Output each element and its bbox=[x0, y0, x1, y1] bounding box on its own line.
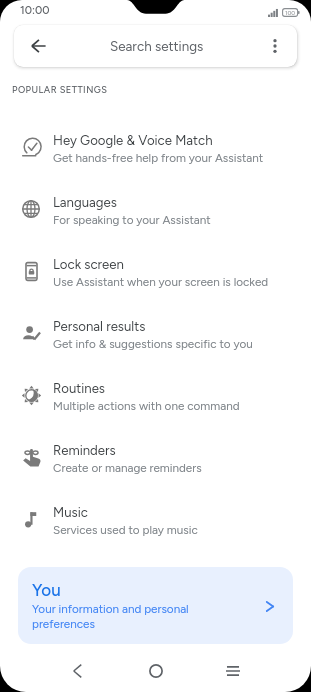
staticText: 10:00 bbox=[20, 3, 50, 17]
staticText: Music bbox=[53, 504, 88, 520]
staticText: 100 bbox=[285, 9, 296, 16]
staticText: Create or manage reminders bbox=[53, 461, 202, 475]
staticText: Routines bbox=[53, 380, 106, 396]
staticText: Reminders bbox=[53, 442, 116, 458]
button[interactable]: Recent apps bbox=[213, 651, 253, 691]
button[interactable]: Hey Google & Voice Match bbox=[0, 127, 311, 189]
button[interactable]: Lock screen bbox=[0, 251, 311, 313]
staticText: Lock screen bbox=[53, 256, 124, 272]
staticText: Use Assistant when your screen is locked bbox=[53, 275, 269, 289]
staticText: POPULAR SETTINGS bbox=[12, 84, 108, 95]
staticText: Services used to play music bbox=[53, 523, 198, 537]
button[interactable]: Back bbox=[57, 651, 97, 691]
button[interactable]: You bbox=[18, 567, 293, 644]
button[interactable]: Personal results bbox=[0, 313, 311, 375]
button[interactable]: Back bbox=[19, 27, 57, 65]
staticText: Languages bbox=[53, 194, 117, 210]
staticText: Your information and personal preference… bbox=[32, 602, 189, 631]
button[interactable]: More options bbox=[258, 29, 292, 63]
button[interactable]: Languages bbox=[0, 189, 311, 251]
staticText: Hey Google & Voice Match bbox=[53, 132, 213, 148]
staticText: Search settings bbox=[110, 38, 204, 54]
staticText: Get info & suggestions specific to you bbox=[53, 337, 253, 351]
staticText: Personal results bbox=[53, 318, 146, 334]
button[interactable]: Music bbox=[0, 499, 311, 561]
button[interactable]: Home bbox=[136, 651, 176, 691]
staticText: You bbox=[32, 580, 61, 600]
staticText: Get hands-free help from your Assistant bbox=[53, 151, 264, 165]
button[interactable]: Routines bbox=[0, 375, 311, 437]
staticText: Multiple actions with one command bbox=[53, 399, 240, 413]
button[interactable]: Reminders bbox=[0, 437, 311, 499]
staticText: For speaking to your Assistant bbox=[53, 213, 211, 227]
